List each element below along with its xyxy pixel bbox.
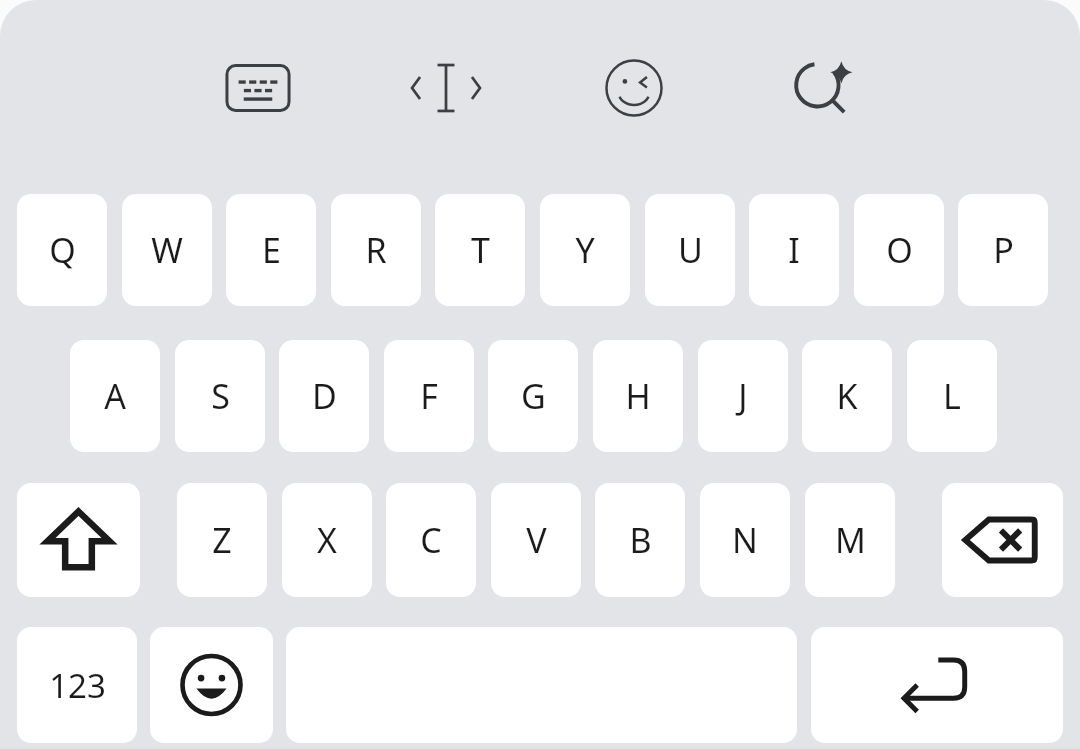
staticText: S [211,373,230,419]
staticText: Q [49,227,76,273]
staticText: T [471,227,490,273]
button[interactable]: I [749,194,839,306]
button[interactable]: Q [17,194,107,306]
staticText: P [993,227,1014,273]
staticText: Z [212,517,232,563]
button[interactable]: Backspace [942,483,1063,597]
button[interactable]: Emoji and stickers [602,56,666,120]
button[interactable]: L [907,340,997,452]
button[interactable]: Shift [17,483,140,597]
button[interactable]: P [958,194,1048,306]
button[interactable]: A [70,340,160,452]
button[interactable]: H [593,340,683,452]
button[interactable]: J [698,340,788,452]
staticText: K [836,373,858,419]
staticText: 123 [49,663,106,708]
button[interactable]: Emoji [150,627,273,743]
button[interactable]: D [279,340,369,452]
staticText: A [104,373,126,419]
button[interactable]: U [645,194,735,306]
button[interactable]: R [331,194,421,306]
button[interactable]: Keyboard [226,56,290,120]
button[interactable]: E [226,194,316,306]
button[interactable]: G [488,340,578,452]
staticText: G [521,373,546,419]
staticText: O [886,227,913,273]
staticText: U [678,227,703,273]
staticText: Y [575,227,595,273]
button[interactable]: Z [177,483,267,597]
button[interactable]: Y [540,194,630,306]
staticText: L [943,373,961,419]
staticText: B [629,517,652,563]
button[interactable]: S [175,340,265,452]
staticText: E [262,227,281,273]
button[interactable]: X [282,483,372,597]
button[interactable]: 123 [17,627,137,743]
button[interactable]: T [435,194,525,306]
button[interactable]: W [122,194,212,306]
staticText: X [317,517,337,563]
staticText: M [835,517,866,563]
staticText: R [365,227,387,273]
staticText: V [526,517,547,563]
staticText: N [732,517,758,563]
staticText: F [420,373,438,419]
button[interactable]: V [491,483,581,597]
button[interactable]: O [854,194,944,306]
staticText: J [738,373,748,419]
button[interactable]: C [386,483,476,597]
button[interactable]: B [595,483,685,597]
button[interactable]: N [700,483,790,597]
button[interactable]: Text cursor controls [414,56,478,120]
staticText: H [625,373,651,419]
staticText: W [151,227,183,273]
button[interactable]: M [805,483,895,597]
button[interactable]: F [384,340,474,452]
staticText: D [312,373,337,419]
button[interactable]: K [802,340,892,452]
button[interactable]: Search [790,56,854,120]
button[interactable]: Enter [811,627,1063,743]
staticText: C [420,517,442,563]
staticText: I [788,227,800,273]
